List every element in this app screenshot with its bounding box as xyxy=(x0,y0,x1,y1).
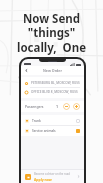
staticText: offers More xyxy=(18,69,85,85)
staticText: Passengers xyxy=(25,104,44,109)
staticText: PETERSBURG BL, MOSCOW, RUSS xyxy=(31,81,80,85)
staticText: Apply now xyxy=(34,177,52,182)
staticText: Service animals xyxy=(32,129,56,133)
button[interactable]: Add passenger xyxy=(73,103,80,110)
button[interactable]: Trunk xyxy=(21,116,84,125)
staticText: Trunk xyxy=(32,119,41,123)
staticText: OFFICE BLVD 8, MOSCOW, RUSS xyxy=(31,90,78,94)
button[interactable]: OFFICE BLVD 8, MOSCOW, RUSS xyxy=(21,88,84,96)
staticText: Become a driver on the road xyxy=(34,172,70,176)
staticText: 1 xyxy=(56,104,59,109)
button[interactable]: PETERSBURG BL, MOSCOW, RUSS xyxy=(21,79,84,87)
staticText: Now Send "things" xyxy=(5,11,98,40)
staticText: New Order xyxy=(43,68,63,73)
staticText: locally, One Rover xyxy=(5,40,98,69)
button[interactable]: Back xyxy=(23,67,30,74)
button[interactable]: Service animals xyxy=(21,126,84,135)
button[interactable]: Become a driver on the road xyxy=(21,170,84,183)
button[interactable]: Remove passenger xyxy=(63,103,70,110)
